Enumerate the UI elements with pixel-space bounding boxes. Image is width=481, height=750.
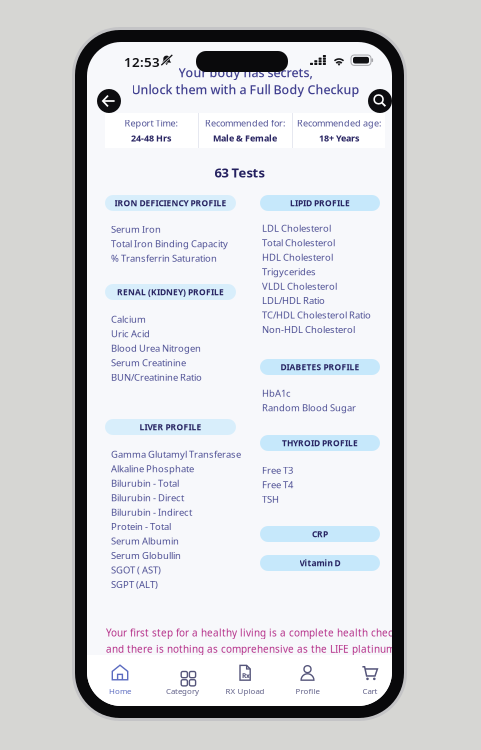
button[interactable]: Vitamin D	[260, 555, 380, 571]
staticText: Bilurubin - Direct	[111, 491, 184, 504]
staticText: Profile	[295, 686, 319, 696]
staticText: TSH	[262, 493, 279, 505]
button[interactable]: Rx	[216, 660, 274, 700]
staticText: CRP	[312, 528, 328, 540]
staticText: VLDL Cholesterol	[262, 280, 337, 292]
staticText: BUN/Creatinine Ratio	[111, 371, 202, 383]
staticText: RENAL (KIDNEY) PROFILE	[117, 286, 224, 298]
staticText: Blood Urea Nitrogen	[111, 342, 201, 354]
button[interactable]: Back	[97, 89, 121, 113]
staticText: Protein - Total	[111, 520, 171, 533]
staticText: Home	[109, 686, 131, 696]
staticText: Rx	[242, 671, 250, 680]
staticText: LDL Cholesterol	[262, 222, 331, 234]
staticText: TC/HDL Cholesterol Ratio	[262, 309, 371, 321]
button[interactable]: DIABETES PROFILE	[260, 359, 380, 375]
staticText: LIVER PROFILE	[139, 421, 201, 433]
button[interactable]: LIPID PROFILE	[260, 195, 380, 211]
staticText: THYROID PROFILE	[282, 437, 358, 449]
staticText: 24-48 Hrs	[131, 132, 171, 144]
button[interactable]: Profile	[278, 660, 336, 700]
staticText: 63 Tests	[214, 164, 264, 181]
staticText: Free T4	[262, 478, 293, 491]
staticText: SGPT (ALT)	[111, 578, 158, 590]
staticText: LIPID PROFILE	[290, 197, 350, 209]
staticText: Serum Albumin	[111, 535, 179, 547]
staticText: Trigycerides	[262, 265, 316, 278]
staticText: IRON DEFICIENCY PROFILE	[114, 197, 226, 209]
staticText: Male & Female	[213, 132, 277, 144]
staticText: Alkaline Phosphate	[111, 462, 194, 475]
staticText: LDL/HDL Ratio	[262, 294, 325, 307]
staticText: Gamma Glutamyl Transferase	[111, 448, 241, 460]
staticText: Bilurubin - Indirect	[111, 506, 192, 518]
staticText: Bilurubin - Total	[111, 477, 179, 489]
staticText: Total Cholesterol	[262, 236, 335, 249]
staticText: SGOT ( AST)	[111, 564, 161, 576]
button[interactable]: Search	[368, 89, 392, 113]
staticText: Serum Creatinine	[111, 356, 186, 369]
button[interactable]: RENAL (KIDNEY) PROFILE	[105, 284, 236, 300]
staticText: Report Time:	[124, 117, 177, 129]
staticText: Serum Iron	[111, 223, 161, 235]
staticText: RX Upload	[225, 686, 264, 696]
staticText: Calcium	[111, 313, 146, 325]
button[interactable]: Home	[91, 660, 149, 700]
staticText: 18+ Years	[319, 132, 359, 144]
button[interactable]: Category	[153, 660, 211, 700]
staticText: HbA1c	[262, 387, 291, 399]
staticText: Your body has secrets,	[178, 64, 312, 81]
staticText: Vitamin D	[299, 557, 340, 569]
staticText: Recommended age:	[297, 117, 381, 129]
staticText: Random Blood Sugar	[262, 401, 356, 414]
staticText: Unlock them with a Full Body Checkup	[131, 81, 359, 98]
button[interactable]: IRON DEFICIENCY PROFILE	[105, 195, 236, 211]
staticText: Non-HDL Cholesterol	[262, 323, 355, 336]
staticText: % Transferrin Saturation	[111, 252, 217, 264]
staticText: Cart	[362, 686, 377, 696]
staticText: Recommended for:	[205, 117, 285, 129]
staticText: Category	[166, 686, 199, 696]
staticText: Your first step for a healthy living is …	[106, 626, 410, 639]
staticText: Serum Globullin	[111, 549, 181, 562]
button[interactable]: THYROID PROFILE	[260, 435, 380, 451]
button[interactable]: Cart	[341, 660, 399, 700]
staticText: DIABETES PROFILE	[280, 361, 359, 373]
button[interactable]: CRP	[260, 526, 380, 542]
staticText: Uric Acid	[111, 327, 150, 340]
staticText: HDL Cholesterol	[262, 251, 333, 263]
button[interactable]: LIVER PROFILE	[105, 419, 236, 435]
staticText: Free T3	[262, 464, 293, 476]
staticText: 12:53	[124, 53, 160, 71]
staticText: Total Iron Binding Capacity	[111, 237, 228, 250]
staticText: and there is nothing as comprehensive as…	[106, 642, 395, 655]
